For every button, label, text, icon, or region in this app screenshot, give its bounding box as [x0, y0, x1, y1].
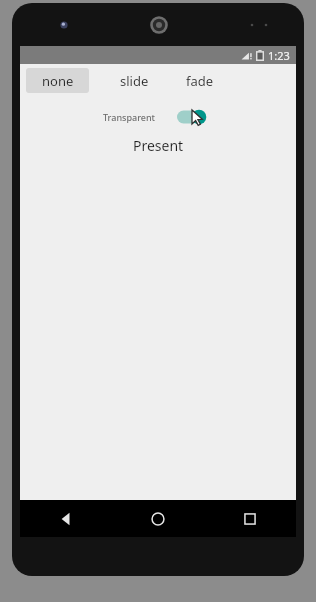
staticText: Transparent [103, 111, 156, 123]
button[interactable]: Home [112, 500, 204, 537]
staticText: slide [120, 72, 149, 90]
staticText: Present [20, 136, 296, 155]
staticText: none [42, 72, 74, 90]
button[interactable]: slide [108, 68, 160, 93]
button[interactable]: Back [20, 500, 112, 537]
button[interactable]: Recents [204, 500, 296, 537]
staticText: fade [186, 72, 214, 90]
button[interactable]: Transparent toggle [175, 107, 211, 127]
button[interactable]: fade [176, 68, 224, 93]
staticText: 1:23 [268, 48, 290, 63]
button[interactable]: none [26, 68, 89, 93]
